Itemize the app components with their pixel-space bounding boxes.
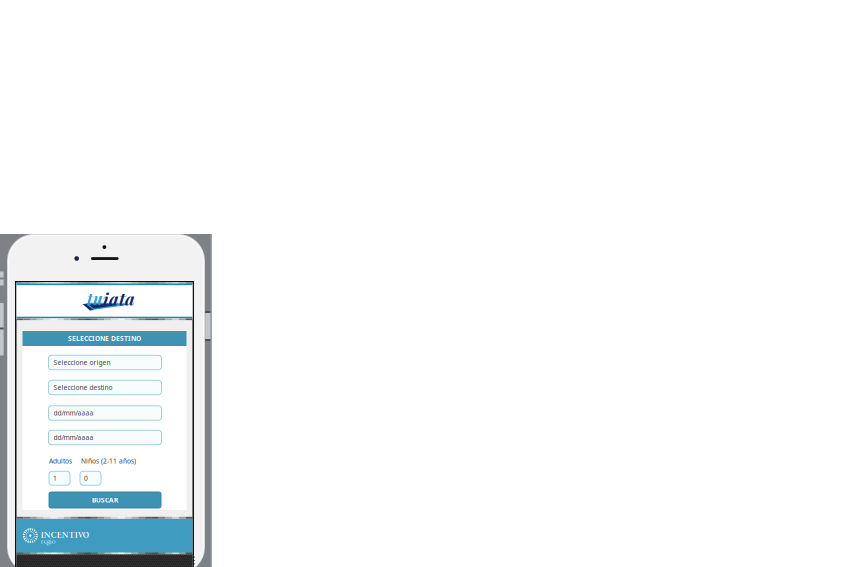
button[interactable]: dd/mm/aaaa	[48, 430, 161, 445]
staticText: Seleccione origen	[53, 358, 110, 367]
staticText: regio	[41, 536, 56, 546]
button[interactable]: Seleccione origen	[48, 355, 161, 370]
button[interactable]: 0	[80, 471, 101, 485]
staticText: dd/mm/aaaa	[53, 409, 93, 417]
button[interactable]: SELECCIONE DESTINO	[22, 331, 186, 346]
staticText: Niños (2-11 años)	[81, 457, 136, 465]
staticText: dd/mm/aaaa	[53, 433, 93, 442]
button[interactable]: Seleccione destino	[48, 380, 161, 395]
staticText: 1	[53, 474, 57, 483]
button[interactable]: 1	[49, 471, 70, 485]
staticText: Adultos	[49, 457, 72, 465]
staticText: iata	[103, 287, 135, 310]
staticText: BUSCAR	[92, 496, 118, 504]
staticText: INCENTIVO	[41, 529, 89, 540]
staticText: tu	[87, 288, 103, 309]
staticText: SELECCIONE DESTINO	[68, 334, 141, 343]
staticText: Seleccione destino	[53, 383, 112, 392]
button[interactable]: BUSCAR	[49, 492, 161, 508]
staticText: 0	[84, 474, 88, 483]
button[interactable]: dd/mm/aaaa	[48, 406, 161, 420]
